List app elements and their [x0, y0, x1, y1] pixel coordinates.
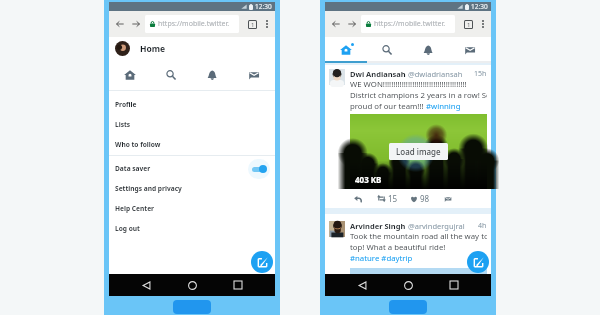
staticText: 12:30	[471, 2, 488, 11]
staticText: Profile	[115, 100, 137, 109]
staticText: Log out	[115, 224, 140, 233]
button[interactable]: Help Center	[109, 198, 275, 218]
staticText: Settings and privacy	[115, 184, 182, 193]
staticText: https://mobile.twitter.	[158, 19, 230, 29]
button[interactable]: Reply	[352, 193, 363, 204]
button[interactable]: Back	[353, 276, 371, 294]
staticText: #nature #daytrip	[350, 253, 413, 264]
button[interactable]: Share	[442, 193, 453, 204]
button[interactable]: More options	[477, 18, 489, 30]
button[interactable]: Tabs	[462, 18, 475, 31]
staticText: Home	[140, 43, 166, 55]
button[interactable]: Who to follow	[109, 134, 275, 154]
button[interactable]: Search	[150, 60, 191, 90]
staticText: WE WON!!!!!!!!!!!!!!!!!!!!!!!!!!!!!!!!!!…	[350, 79, 467, 90]
button[interactable]: Back	[114, 18, 126, 30]
button[interactable]: Arvinder Singh	[325, 214, 491, 274]
button[interactable]: Home	[109, 60, 150, 90]
staticText: #winning	[426, 101, 461, 112]
button[interactable]: Settings and privacy	[109, 178, 275, 198]
button[interactable]: Messages	[449, 37, 491, 63]
button[interactable]: Recents	[229, 276, 247, 294]
staticText: @dwiadriansah	[408, 69, 463, 79]
button[interactable]: Forward	[130, 18, 142, 30]
button[interactable]: https://mobile.twitter.	[361, 15, 455, 33]
staticText: 12:30	[255, 2, 272, 11]
button[interactable]: Notifications	[191, 60, 233, 90]
staticText: 1	[467, 21, 471, 28]
button[interactable]: 98	[410, 193, 430, 204]
button[interactable]: Back	[137, 276, 155, 294]
button[interactable]: Home	[109, 37, 275, 60]
staticText: 403 KB	[355, 174, 382, 185]
staticText: @arvindergujral	[408, 221, 465, 231]
staticText: https://mobile.twitter.	[374, 19, 446, 29]
staticText: 98	[420, 193, 430, 204]
button[interactable]: Tabs	[246, 18, 259, 31]
staticText: 15	[388, 193, 398, 204]
button[interactable]: Tweet photo	[350, 114, 487, 189]
button[interactable]: Back	[330, 18, 342, 30]
button[interactable]: Home	[183, 276, 201, 294]
button[interactable]: More options	[261, 18, 273, 30]
button[interactable]: Profile	[109, 94, 275, 114]
staticText: Took the mountain road all the way to th…	[350, 231, 487, 242]
button[interactable]: Log out	[109, 218, 275, 238]
staticText: 4h	[478, 221, 487, 231]
button[interactable]: https://mobile.twitter.	[145, 15, 239, 33]
staticText: Who to follow	[115, 140, 161, 149]
button[interactable]: Compose tweet	[467, 251, 489, 273]
staticText: Dwi Andiansah	[350, 69, 406, 79]
staticText: proud of our team!!!	[350, 101, 426, 112]
button[interactable]: Search	[366, 37, 407, 63]
button[interactable]: Compose tweet	[251, 251, 273, 273]
button[interactable]: Load image	[389, 143, 448, 160]
button[interactable]: Home	[399, 276, 417, 294]
staticText: District champions 2 years in a row! So	[350, 90, 487, 101]
button[interactable]: Data saver	[109, 158, 275, 178]
staticText: 1	[251, 21, 255, 28]
button[interactable]: Forward	[346, 18, 358, 30]
button[interactable]: 15	[377, 193, 398, 204]
staticText: Lists	[115, 120, 131, 129]
button[interactable]: Notifications	[407, 37, 449, 63]
staticText: top! What a beautiful ride!	[350, 242, 446, 253]
button[interactable]: Recents	[445, 276, 463, 294]
button[interactable]: Home	[325, 37, 366, 63]
staticText: Arvinder Singh	[350, 221, 406, 231]
button[interactable]: Lists	[109, 114, 275, 134]
staticText: 15h	[474, 69, 487, 79]
button[interactable]: Messages	[233, 60, 275, 90]
staticText: Data saver	[115, 164, 151, 173]
staticText: Help Center	[115, 204, 155, 213]
button[interactable]: Dwi Andiansah	[325, 65, 491, 208]
staticText: Load image	[396, 146, 441, 157]
